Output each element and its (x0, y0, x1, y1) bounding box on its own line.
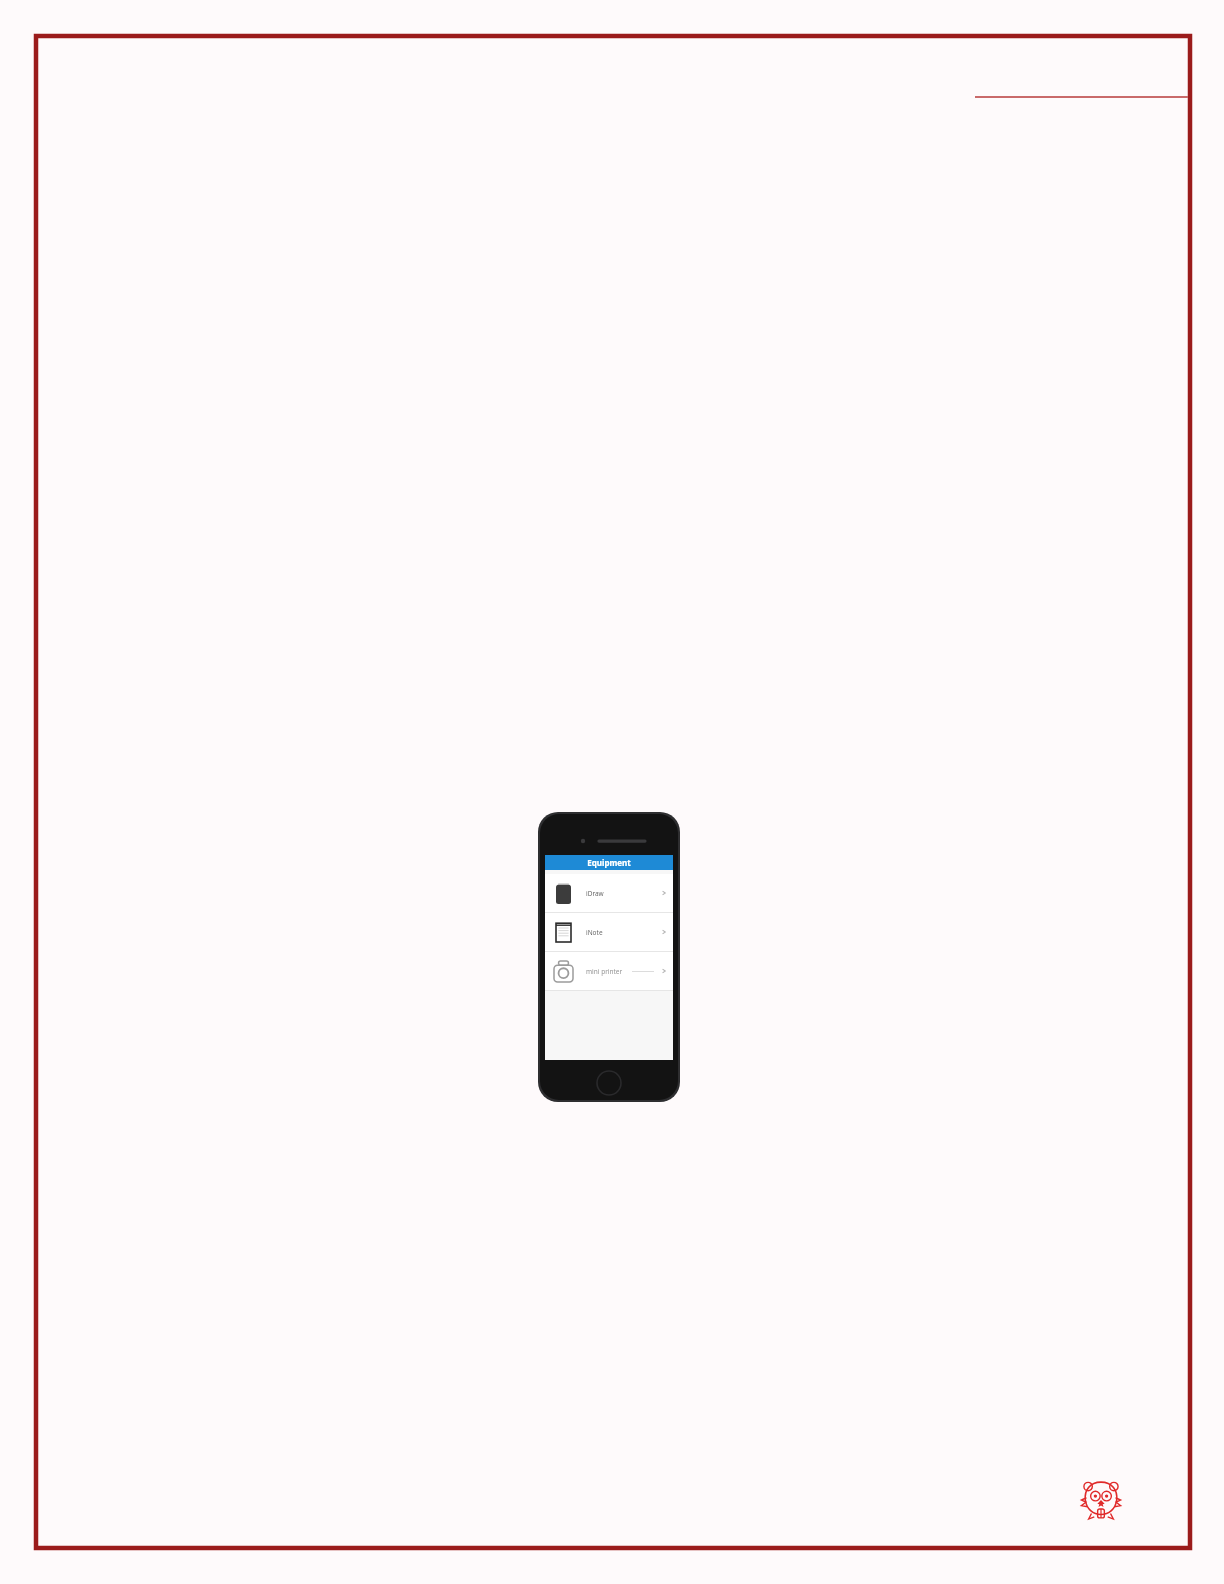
staticText: iNote (586, 928, 603, 937)
staticText: iDraw (586, 889, 604, 898)
other: Beaver logo (1073, 1472, 1129, 1528)
staticText: mini printer (586, 967, 623, 976)
button[interactable]: iNote (545, 913, 673, 951)
button[interactable]: iDraw (545, 874, 673, 912)
button[interactable]: mini printer (545, 952, 673, 990)
staticText: Equipment (587, 857, 631, 868)
